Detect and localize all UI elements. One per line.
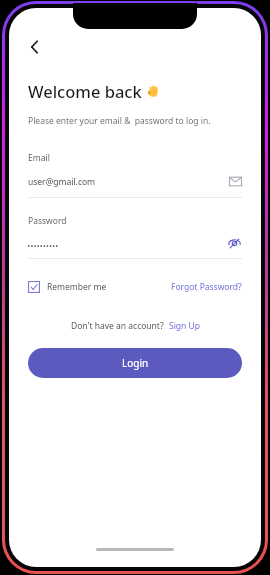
button[interactable]: Login	[28, 348, 242, 378]
button[interactable]: Sign Up	[169, 320, 200, 332]
staticText: Login	[122, 356, 149, 370]
button[interactable]: Remember me	[28, 281, 107, 293]
staticText: user@gmail.com	[28, 176, 229, 188]
staticText: Forgot Password?	[171, 281, 242, 293]
button[interactable]: Forgot Password?	[171, 281, 242, 293]
button[interactable]: user@gmail.com	[28, 175, 242, 188]
button[interactable]: Back	[19, 31, 51, 63]
staticText: Remember me	[47, 281, 107, 293]
staticText: Email	[28, 152, 50, 164]
staticText: Welcome back	[28, 80, 142, 102]
staticText: Sign Up	[169, 320, 200, 332]
staticText: Please enter your email & password to lo…	[28, 115, 211, 127]
button[interactable]: Show password	[227, 236, 242, 250]
staticText: Don't have an account?	[71, 320, 164, 332]
button[interactable]: Show password	[28, 236, 242, 250]
staticText: Password	[28, 215, 67, 227]
